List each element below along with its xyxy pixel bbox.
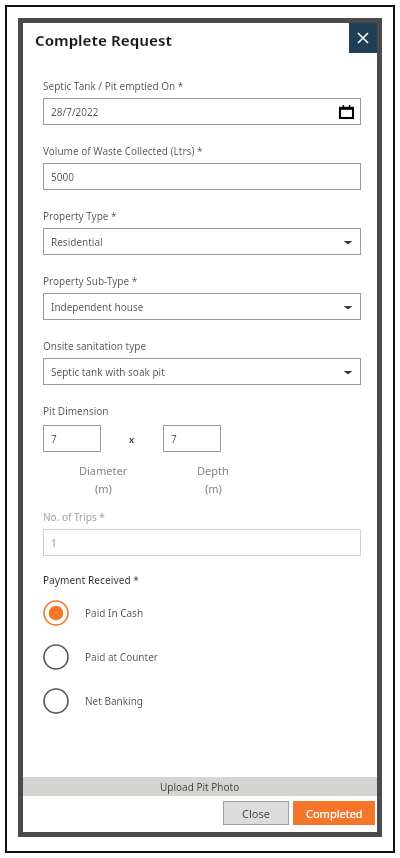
button[interactable]: 28/7/2022 [43, 98, 361, 125]
staticText: Completed [306, 806, 363, 821]
staticText: (m) [95, 481, 112, 496]
button[interactable]: 7 [163, 425, 221, 452]
staticText: Complete Request [35, 30, 172, 50]
button[interactable]: Paid In Cash [43, 591, 361, 635]
button[interactable]: Net Banking [43, 679, 361, 723]
staticText: (m) [205, 481, 222, 496]
button[interactable]: Independent house [43, 293, 361, 320]
button[interactable]: 5000 [43, 163, 361, 190]
staticText: Net Banking [85, 694, 143, 708]
staticText: Close [242, 806, 270, 821]
button[interactable]: Residential [43, 228, 361, 255]
staticText: Residential [51, 235, 103, 249]
staticText: Independent house [51, 300, 144, 314]
staticText: D [373, 442, 380, 454]
button[interactable]: 7 [43, 425, 101, 452]
staticText: Upload Pit Photo [160, 780, 240, 794]
staticText: 5000 [51, 170, 74, 184]
staticText: Pit Dimension [43, 404, 109, 418]
button[interactable]: Septic tank with soak pit [43, 358, 361, 385]
button[interactable]: Close dialog [349, 23, 377, 53]
staticText: Property Type * [43, 209, 117, 223]
button[interactable]: 1 [43, 529, 361, 556]
staticText: Property Sub-Type * [43, 274, 138, 288]
staticText: Septic Tank / Pit emptied On * [43, 79, 184, 93]
button[interactable]: Close [223, 801, 289, 825]
staticText: Payment Received * [43, 573, 139, 587]
staticText: 1 [51, 536, 57, 550]
staticText: Volume of Waste Collected (Ltrs) * [43, 144, 203, 158]
button[interactable]: Upload Pit Photo [23, 777, 377, 796]
staticText: Onsite sanitation type [43, 339, 147, 353]
button[interactable]: Completed [293, 801, 375, 825]
staticText: Diameter [79, 463, 128, 478]
staticText: 7 [51, 432, 57, 446]
staticText: x [129, 433, 135, 445]
staticText: Paid In Cash [85, 606, 144, 620]
staticText: Septic tank with soak pit [51, 365, 165, 379]
staticText: 28/7/2022 [51, 105, 99, 119]
button[interactable]: Paid at Counter [43, 635, 361, 679]
staticText: No. of Trips * [43, 510, 105, 524]
staticText: 7 [171, 432, 177, 446]
staticText: Paid at Counter [85, 650, 158, 664]
staticText: Depth [197, 463, 229, 478]
